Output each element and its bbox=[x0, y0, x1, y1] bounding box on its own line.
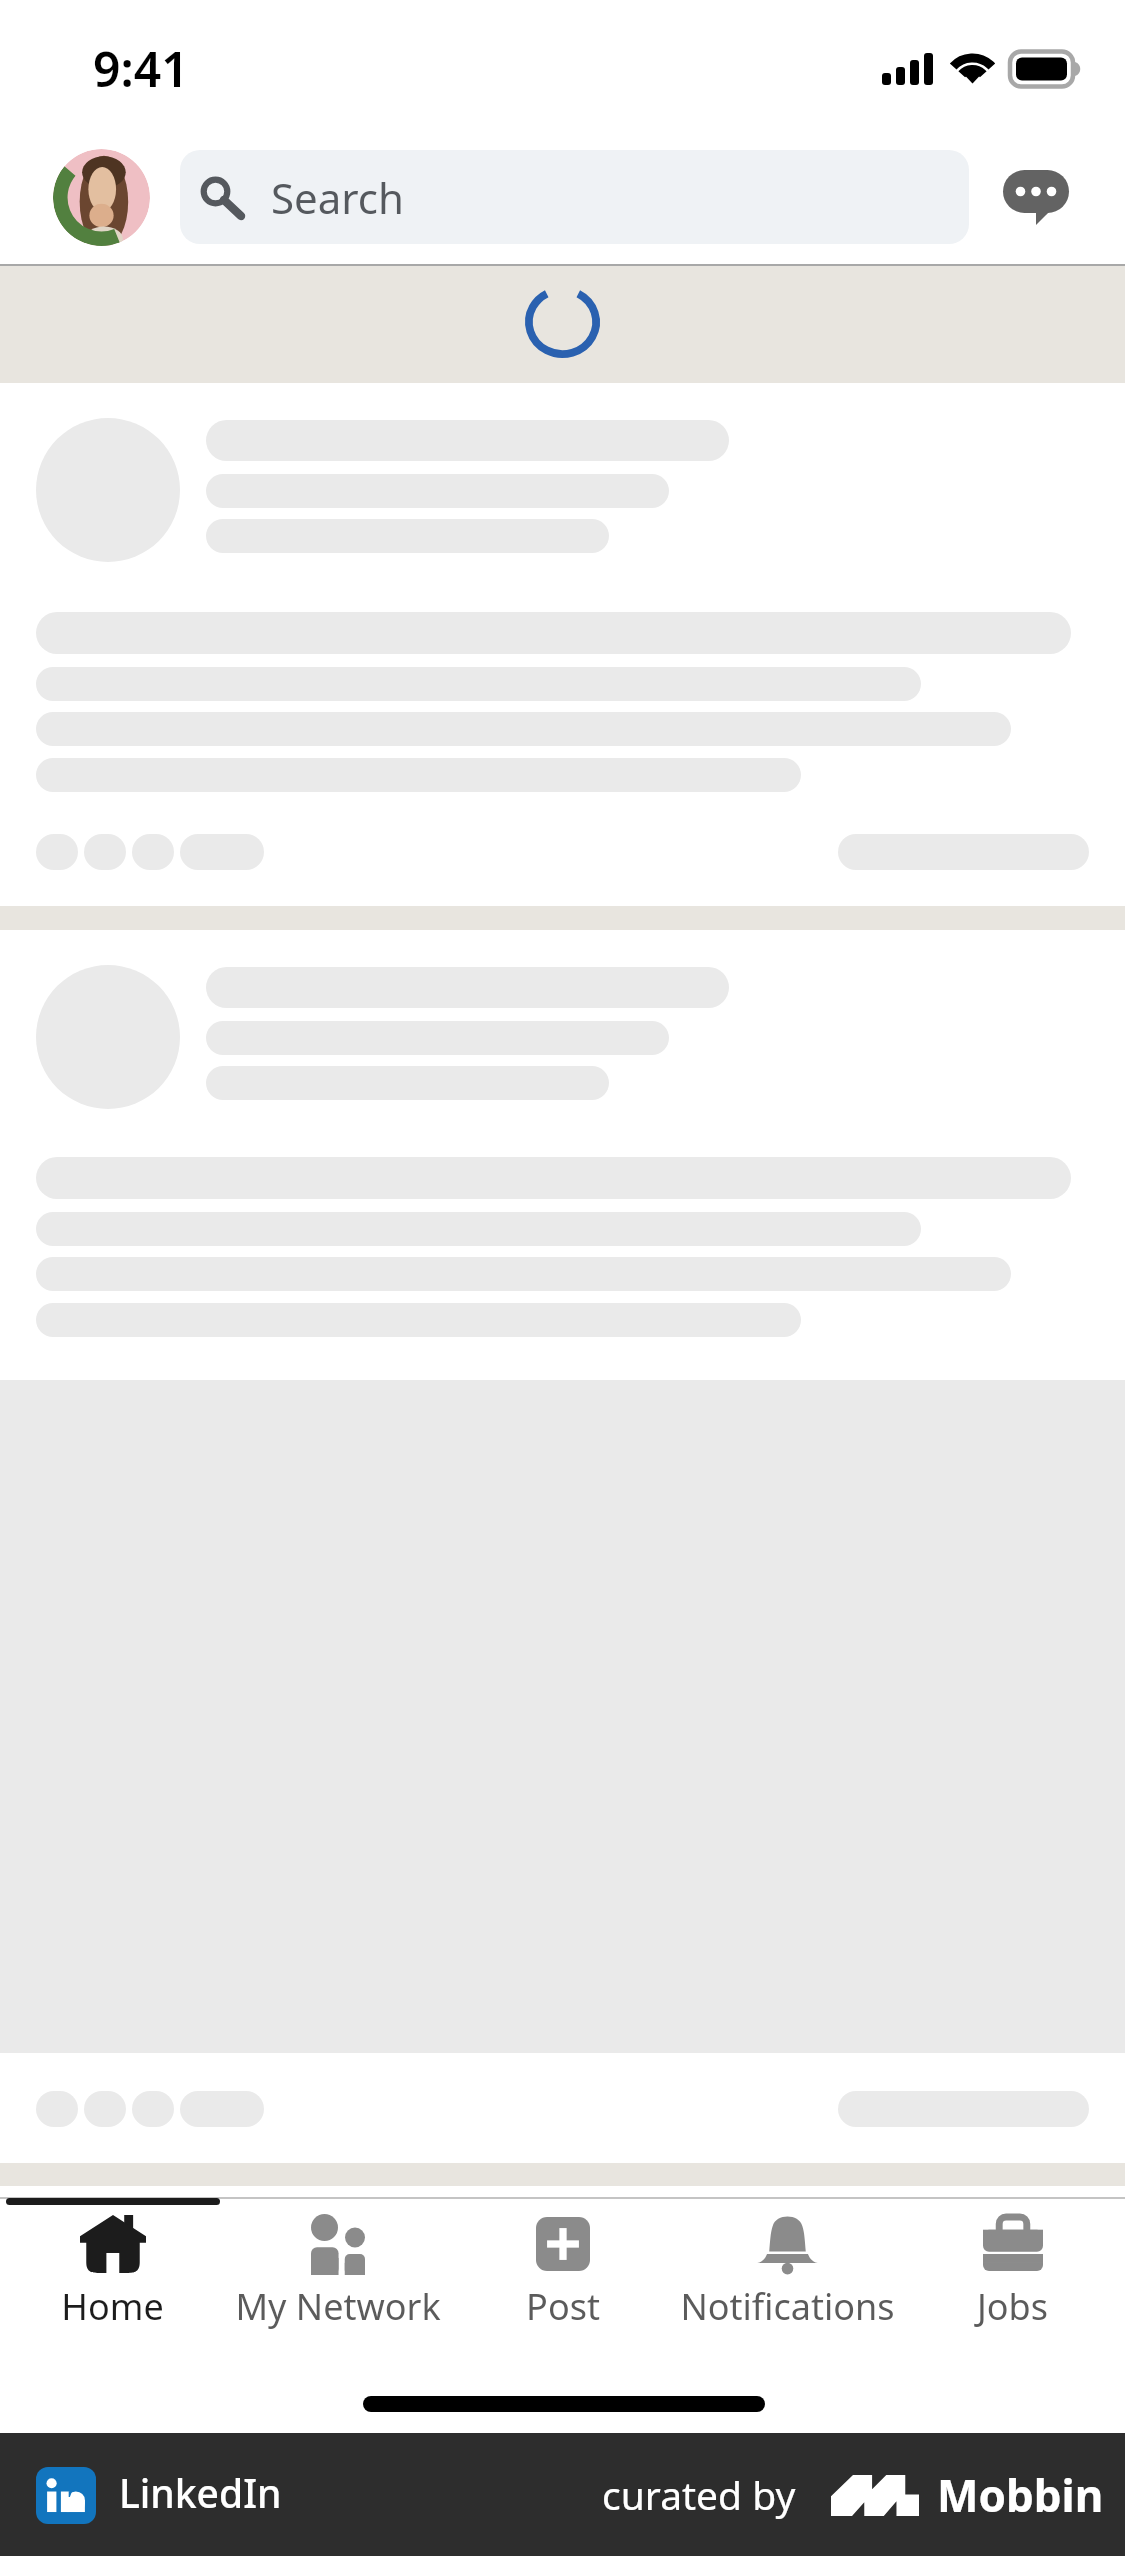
staticText: My Network bbox=[235, 2282, 441, 2331]
staticText: Post bbox=[526, 2282, 600, 2331]
button[interactable]: Home bbox=[0, 2205, 225, 2331]
staticText: LinkedIn bbox=[119, 2466, 282, 2519]
button[interactable]: Messaging bbox=[969, 130, 1102, 264]
button[interactable]: Jobs bbox=[900, 2205, 1125, 2331]
staticText: Notifications bbox=[680, 2282, 895, 2331]
button[interactable]: Post bbox=[450, 2205, 675, 2331]
staticText: curated by bbox=[602, 2468, 796, 2521]
staticText: 9:41 bbox=[93, 36, 189, 101]
staticText: Mobbin bbox=[937, 2465, 1104, 2525]
staticText: Search bbox=[271, 169, 404, 226]
button[interactable]: Profile bbox=[53, 149, 150, 246]
staticText: Home bbox=[61, 2282, 164, 2331]
button[interactable]: My Network bbox=[225, 2205, 450, 2331]
button[interactable]: Notifications bbox=[675, 2205, 900, 2331]
staticText: Jobs bbox=[977, 2282, 1048, 2331]
button[interactable]: Search bbox=[180, 150, 969, 244]
